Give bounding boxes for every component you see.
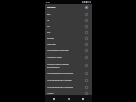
staticText: Accessibilité numérique [47,49,84,52]
button[interactable]: Accident travail maladie professionnel [45,61,92,70]
staticText: BEP [47,13,84,16]
staticText: Affichage [47,43,84,46]
button[interactable]: MI [45,23,92,29]
staticText: VAE [47,31,84,34]
staticText: BD/BEE [47,37,84,40]
button[interactable]: Accompagnement à l'emploi [45,84,92,91]
button[interactable]: Accueil [45,91,92,95]
staticText: Domaine [47,6,84,9]
staticText: 9:41 [46,1,50,4]
button[interactable]: Accompagnement mobilité [45,77,92,84]
staticText: Accident travail maladie professionnel [47,63,84,69]
button[interactable]: Accessibilité numérique [45,47,92,54]
button[interactable]: TR [45,17,92,23]
button[interactable]: Recents [78,95,88,102]
button[interactable]: Accompagnement formation [45,70,92,77]
button[interactable]: Domaine [45,4,92,11]
staticText: Accompagnement mobilité [47,79,84,82]
button[interactable]: Affichage [45,41,92,47]
button[interactable]: Back [49,95,59,102]
button[interactable]: VAE [45,29,92,35]
button[interactable]: Accession mode [45,54,92,61]
staticText: Accompagnement à l'emploi [47,86,84,89]
staticText: MI [47,25,84,28]
staticText: Accueil [47,92,84,95]
staticText: Accession mode [47,56,84,59]
button[interactable]: BEP [45,11,92,17]
button[interactable]: Home [64,95,74,102]
staticText: Accompagnement formation [47,72,84,75]
button[interactable]: BD/BEE [45,35,92,41]
staticText: TR [47,19,84,22]
